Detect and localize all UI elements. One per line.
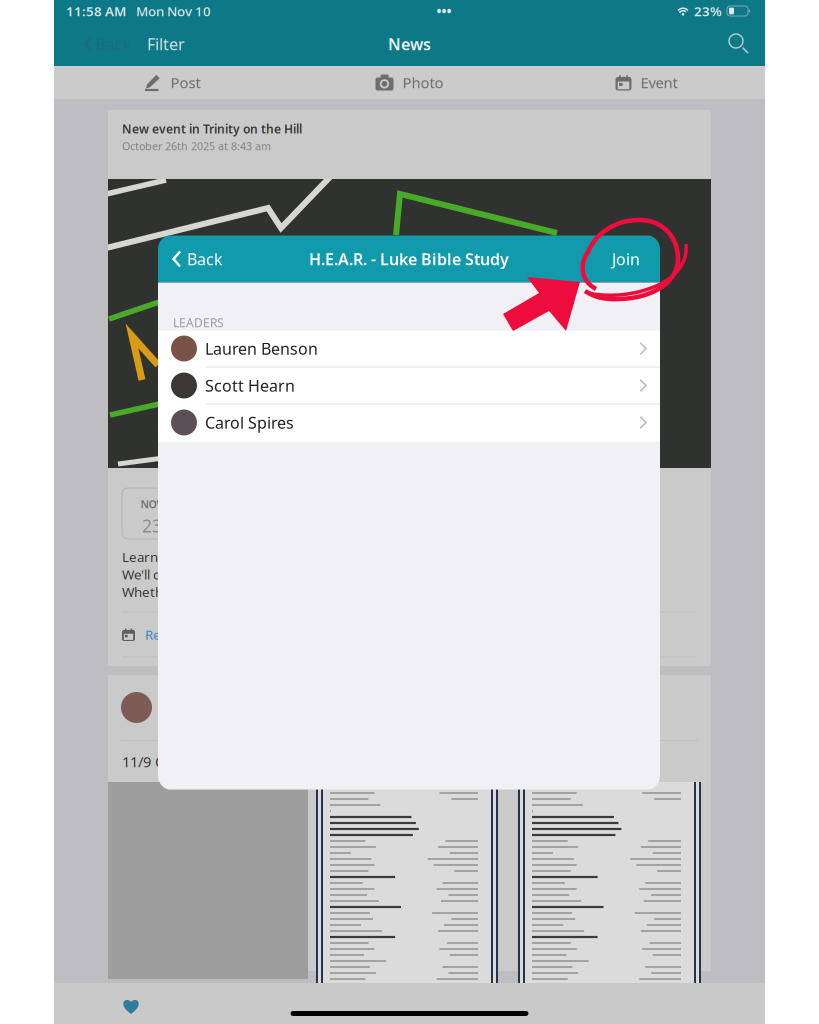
staticText: 23	[142, 514, 162, 537]
staticText: Learn how the Bible can be studied and a…	[122, 548, 415, 566]
staticText: Back	[96, 33, 132, 55]
button[interactable]: Back	[158, 235, 231, 282]
staticText: •••	[436, 2, 451, 20]
staticText: Remind me	[145, 626, 215, 643]
staticText: H.E.A.R. - Luke Bible Study	[309, 248, 509, 270]
button[interactable]: Filter	[138, 22, 194, 66]
staticText: Scott Hearn	[205, 375, 295, 396]
staticText: 23%	[694, 2, 722, 20]
button[interactable]: Event	[528, 66, 765, 99]
button[interactable]: Remind me	[122, 612, 696, 656]
staticText: NOV	[140, 497, 163, 511]
button[interactable]: Scott Hearn	[158, 367, 660, 404]
button[interactable]: Post	[54, 66, 291, 99]
staticText: Filter	[147, 33, 185, 55]
staticText: Photo	[402, 73, 443, 92]
button[interactable]: Photo	[291, 66, 528, 99]
staticText: Join	[612, 248, 640, 270]
button[interactable]: Join	[600, 235, 660, 282]
staticText: Post	[170, 73, 200, 92]
staticText: Whether you are new or seasoned, &nbsp..…	[122, 583, 392, 601]
button[interactable]: Lauren Benson	[158, 330, 660, 367]
staticText: Lauren Benson	[205, 338, 318, 359]
staticText: We'll cover the H.E.A.R. method together…	[122, 565, 377, 583]
staticText: LEADERS	[173, 315, 224, 330]
staticText: 11/9 Order of Worship	[122, 752, 274, 771]
staticText: Back	[187, 248, 223, 270]
button[interactable]: Search	[713, 22, 765, 66]
staticText: 11:58 AM	[66, 2, 126, 20]
staticText: October 26th 2025 at 8:43 am	[122, 139, 271, 153]
staticText: Carol Spires	[205, 412, 294, 433]
button[interactable]: Like	[116, 992, 146, 1020]
staticText: News	[388, 33, 431, 55]
staticText: Mon Nov 10	[136, 2, 211, 20]
staticText: New event in Trinity on the Hill	[122, 121, 302, 137]
staticText: Event	[640, 73, 677, 92]
button[interactable]: Carol Spires	[158, 404, 660, 441]
